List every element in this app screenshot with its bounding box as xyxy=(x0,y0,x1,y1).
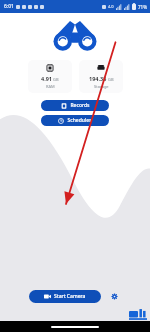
staticText: RAM xyxy=(46,84,55,89)
staticText: 4.0 xyxy=(108,4,114,9)
staticText: 71% xyxy=(138,4,147,10)
staticText: Schedules xyxy=(67,117,92,124)
staticText: Start Camera xyxy=(54,293,86,300)
staticText: Records xyxy=(70,102,90,109)
staticText: 6:01 xyxy=(4,3,14,10)
staticText: GB xyxy=(108,77,114,82)
button[interactable]: Start Camera xyxy=(29,290,101,303)
button[interactable]: Records xyxy=(41,100,109,111)
button[interactable]: Schedules xyxy=(41,115,109,126)
staticText: Storage xyxy=(94,84,109,89)
staticText: 4.91 xyxy=(41,75,52,82)
button[interactable]: 194.35 xyxy=(79,60,123,93)
button[interactable]: 4.91 xyxy=(28,60,72,93)
staticText: GB xyxy=(53,77,59,82)
button[interactable]: Settings xyxy=(108,290,121,303)
staticText: 194.35 xyxy=(89,75,107,82)
